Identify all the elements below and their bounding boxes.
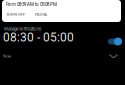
staticText: Now (3, 53, 11, 58)
staticText: Manage notifications (4, 26, 41, 32)
staticText: PAUSE (35, 12, 47, 17)
staticText: TURN OFF (6, 12, 25, 17)
button[interactable]: PAUSE (35, 11, 47, 18)
button[interactable]: Expand (109, 53, 118, 59)
staticText: 08:30 - 05:00 (3, 30, 74, 45)
button[interactable]: TURN OFF (6, 11, 25, 18)
button[interactable]: Schedule on (108, 29, 122, 45)
staticText: From 08:39 AM to 05:08 PM (6, 2, 57, 7)
